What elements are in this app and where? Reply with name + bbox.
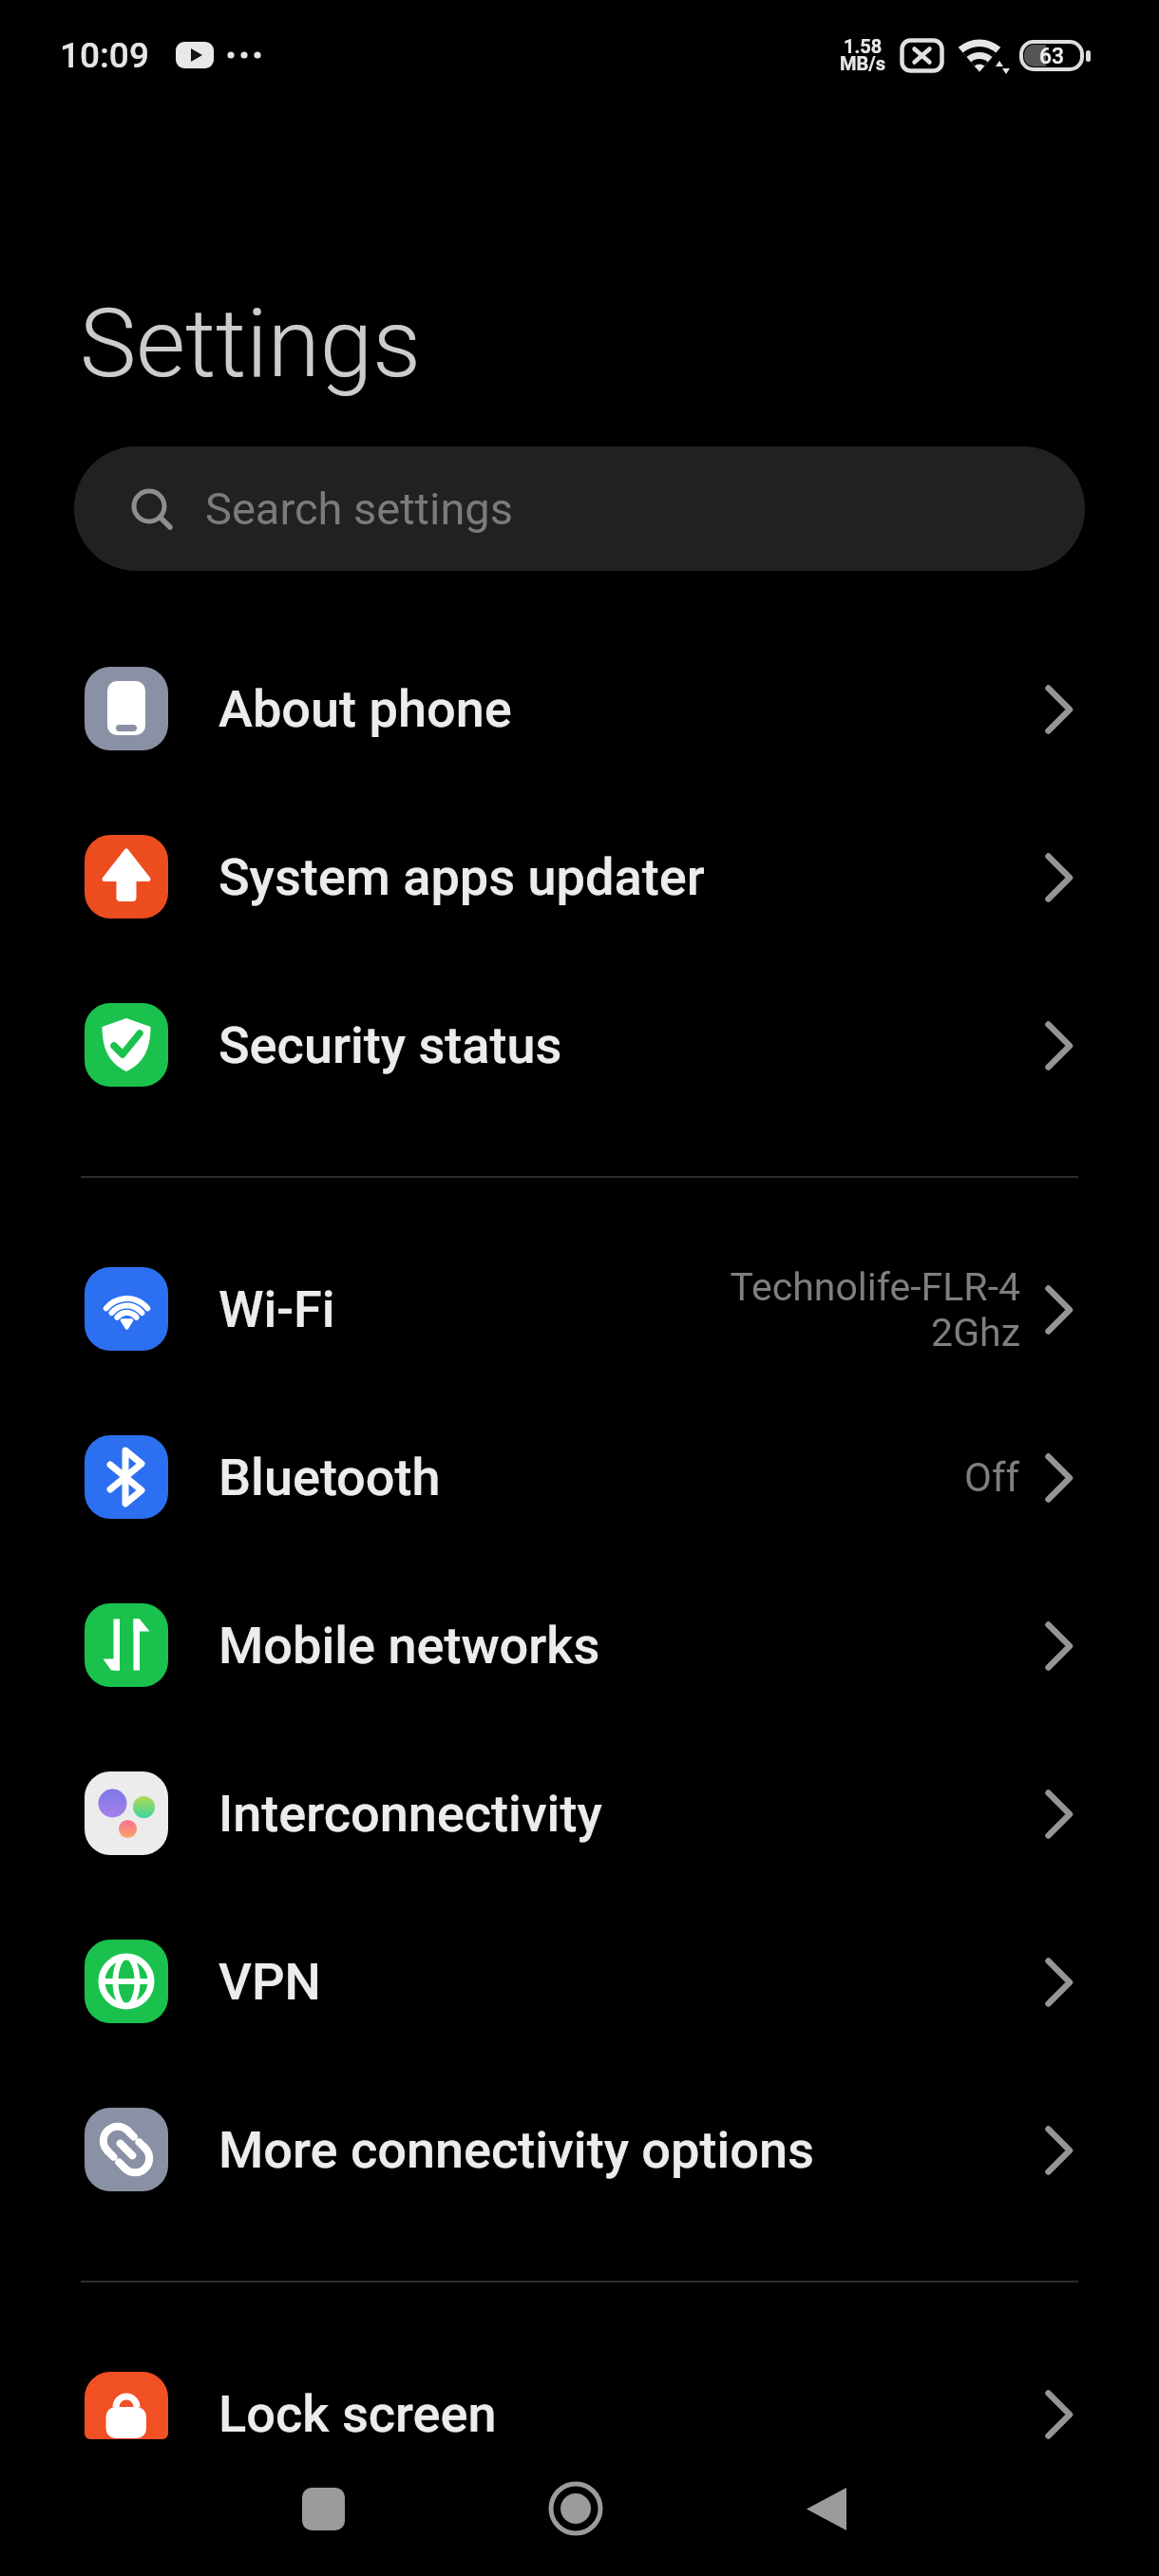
button[interactable]: About phone	[0, 625, 1159, 793]
button[interactable]: More connectivity options	[0, 2066, 1159, 2234]
button[interactable]: Interconnectivity	[0, 1730, 1159, 1898]
staticText: 10:09	[60, 35, 149, 76]
staticText: 2Ghz	[931, 1310, 1020, 1355]
staticText: 1.58	[844, 35, 883, 57]
staticText: Interconnectivity	[218, 1784, 602, 1844]
button[interactable]: Wi-Fi	[0, 1225, 1159, 1393]
button[interactable]: Lock screen	[0, 2330, 1159, 2498]
button[interactable]: VPN	[0, 1898, 1159, 2066]
staticText: Search settings	[205, 483, 513, 535]
button[interactable]: Mobile networks	[0, 1562, 1159, 1730]
button[interactable]: Security status	[0, 961, 1159, 1129]
staticText: MB/s	[840, 52, 886, 74]
staticText: Bluetooth	[218, 1448, 441, 1507]
staticText: 63	[1039, 44, 1065, 69]
staticText: Security status	[218, 1015, 562, 1075]
staticText: Settings	[80, 288, 421, 399]
staticText: Off	[964, 1454, 1020, 1501]
staticText: More connectivity options	[218, 2120, 814, 2180]
button[interactable]: System apps updater	[0, 793, 1159, 961]
button[interactable]: Search settings	[74, 446, 1085, 571]
staticText: Mobile networks	[218, 1616, 600, 1676]
staticText: Lock screen	[218, 2384, 497, 2444]
staticText: About phone	[218, 679, 512, 739]
staticText: System apps updater	[218, 847, 705, 907]
staticText: VPN	[218, 1952, 321, 2012]
staticText: Technolife-FLR-4	[730, 1264, 1020, 1310]
staticText: Wi-Fi	[218, 1279, 335, 1339]
button[interactable]: Bluetooth	[0, 1393, 1159, 1562]
